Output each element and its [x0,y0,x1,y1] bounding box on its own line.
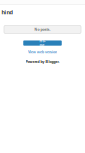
staticText: Home [39,39,45,47]
staticText: hind [1,9,12,15]
staticText: View web version [28,50,57,54]
staticText: Powered by Blogger. [25,60,59,64]
button[interactable]: Powered by Blogger. [25,60,59,64]
button[interactable]: View web version [28,50,57,54]
button[interactable]: Home [23,40,62,46]
staticText: No posts. [34,27,50,31]
